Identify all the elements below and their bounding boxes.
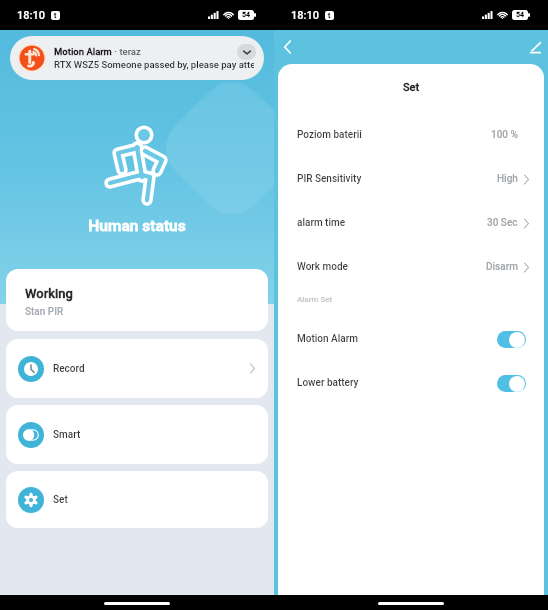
staticText: Human status bbox=[0, 217, 274, 235]
staticText: Work mode bbox=[297, 261, 348, 273]
button[interactable]: Expand notification bbox=[237, 44, 256, 60]
button[interactable]: Working bbox=[6, 269, 268, 331]
staticText: Disarm bbox=[486, 261, 518, 273]
button[interactable]: alarm time bbox=[278, 201, 544, 245]
staticText: 100 % bbox=[491, 129, 518, 141]
staticText: Set bbox=[53, 494, 68, 506]
staticText: Set bbox=[278, 81, 544, 94]
button[interactable]: PIR Sensitivity bbox=[278, 157, 544, 201]
button[interactable]: Motion Alarm bbox=[10, 36, 264, 80]
staticText: alarm time bbox=[297, 217, 346, 229]
staticText: Alarm Set bbox=[297, 295, 333, 304]
staticText: RTX WSZ5 Someone passed by, please pay a… bbox=[54, 59, 254, 70]
staticText: Motion Alarm bbox=[54, 46, 112, 57]
staticText: 54 bbox=[516, 11, 524, 19]
staticText: 18:10 bbox=[17, 9, 45, 22]
button[interactable]: Edit bbox=[522, 34, 548, 60]
button[interactable]: Work mode bbox=[278, 245, 544, 289]
staticText: 18:10 bbox=[291, 9, 319, 22]
staticText: 54 bbox=[242, 11, 250, 19]
button[interactable]: Lower battery bbox=[278, 361, 544, 405]
staticText: Record bbox=[53, 363, 85, 375]
staticText: Poziom baterii bbox=[297, 129, 362, 141]
staticText: PIR Sensitivity bbox=[297, 173, 362, 185]
staticText: Motion Alarm bbox=[297, 333, 358, 345]
button[interactable]: Set bbox=[6, 471, 268, 528]
button[interactable]: Poziom baterii bbox=[278, 113, 544, 157]
button[interactable]: Back bbox=[274, 34, 300, 60]
staticText: t bbox=[328, 12, 331, 20]
staticText: 30 Sec bbox=[487, 217, 518, 229]
button[interactable]: Motion Alarm bbox=[278, 317, 544, 361]
staticText: High bbox=[497, 173, 518, 185]
staticText: Smart bbox=[53, 429, 81, 441]
staticText: t bbox=[54, 12, 57, 20]
button[interactable]: Smart bbox=[6, 405, 268, 464]
staticText: Stan PIR bbox=[25, 306, 64, 318]
staticText: Working bbox=[25, 286, 73, 301]
button[interactable]: Record bbox=[6, 339, 268, 398]
staticText: · teraz bbox=[112, 46, 141, 57]
staticText: Lower battery bbox=[297, 377, 359, 389]
